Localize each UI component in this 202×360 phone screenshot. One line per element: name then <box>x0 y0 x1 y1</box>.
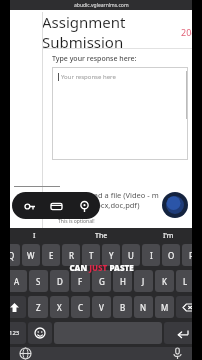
staticText: P <box>189 250 194 261</box>
staticText: abudic.vglearnlms.com <box>74 2 129 9</box>
button[interactable]: Shift <box>2 296 26 318</box>
button[interactable]: H <box>113 270 132 292</box>
button[interactable]: Change language <box>0 347 50 360</box>
staticText: F <box>78 276 83 287</box>
staticText: A <box>14 276 20 287</box>
button[interactable]: W <box>22 244 40 266</box>
staticText: This is optional! <box>58 218 95 225</box>
staticText: E <box>49 250 54 261</box>
button[interactable]: I <box>142 244 160 266</box>
staticText: 20da <box>181 26 202 38</box>
button[interactable]: G <box>92 270 111 292</box>
staticText: B <box>120 302 126 313</box>
staticText: V <box>99 302 104 313</box>
button[interactable]: Emoji <box>28 322 52 344</box>
staticText: H <box>120 276 126 287</box>
button[interactable]: I'm <box>135 228 202 244</box>
button[interactable]: J <box>134 270 153 292</box>
button[interactable]: F <box>71 270 90 292</box>
button[interactable]: Z <box>28 296 48 318</box>
staticText: Your response here <box>61 73 116 81</box>
button[interactable]: Y <box>102 244 120 266</box>
staticText: W <box>27 250 35 261</box>
button[interactable]: M <box>155 296 174 318</box>
staticText: Submission <box>42 32 124 52</box>
staticText: L <box>183 276 188 287</box>
button[interactable]: 123 <box>2 322 26 344</box>
button[interactable]: V <box>92 296 111 318</box>
staticText: N <box>140 302 147 313</box>
staticText: D <box>57 276 63 287</box>
staticText: T <box>89 250 94 261</box>
staticText: U <box>128 250 134 261</box>
staticText: Y <box>109 250 114 261</box>
staticText: Assignment <box>42 12 126 32</box>
staticText: K <box>162 276 167 287</box>
staticText: X <box>57 302 62 313</box>
button[interactable]: E <box>42 244 60 266</box>
staticText: I <box>150 250 153 261</box>
button[interactable]: U <box>122 244 140 266</box>
staticText: 123 <box>9 329 20 337</box>
button[interactable]: Passwords <box>18 195 40 217</box>
staticText: R <box>69 250 74 261</box>
button[interactable]: P <box>182 244 200 266</box>
button[interactable]: Q <box>2 244 20 266</box>
staticText: Type your response here: <box>52 54 137 64</box>
button[interactable]: K <box>155 270 174 292</box>
button[interactable]: D <box>50 270 69 292</box>
button[interactable]: N <box>134 296 153 318</box>
staticText: Z <box>36 302 41 313</box>
staticText: M <box>161 302 169 313</box>
button[interactable]: Backspace <box>176 296 200 318</box>
staticText: upload a file (Video - m <box>78 190 159 200</box>
staticText: C <box>78 302 84 313</box>
staticText: nt - docx,doc,pdf) <box>78 200 140 210</box>
button[interactable]: Enter <box>164 322 200 344</box>
button[interactable]: S <box>29 270 48 292</box>
button[interactable]: L <box>176 270 195 292</box>
staticText: I <box>33 231 36 241</box>
staticText: The <box>95 231 108 241</box>
button[interactable]: A <box>7 270 27 292</box>
staticText: CAN JUST PASTE <box>69 262 134 273</box>
button[interactable]: Voice input <box>152 347 202 360</box>
button[interactable]: B <box>113 296 132 318</box>
staticText: O <box>168 250 175 261</box>
staticText: S <box>36 276 41 287</box>
button[interactable]: I <box>0 228 68 244</box>
button[interactable]: Payment cards <box>45 195 67 217</box>
button[interactable]: O <box>162 244 180 266</box>
button[interactable]: C <box>71 296 90 318</box>
staticText: G <box>99 276 105 287</box>
button[interactable]: X <box>50 296 69 318</box>
button[interactable]: Addresses <box>73 195 95 217</box>
button[interactable]: R <box>62 244 80 266</box>
staticText: J <box>142 276 145 287</box>
button[interactable]: Account <box>162 192 188 218</box>
button[interactable]: The <box>68 228 135 244</box>
staticText: I'm <box>163 231 174 241</box>
staticText: Q <box>8 250 15 261</box>
button[interactable]: T <box>82 244 100 266</box>
